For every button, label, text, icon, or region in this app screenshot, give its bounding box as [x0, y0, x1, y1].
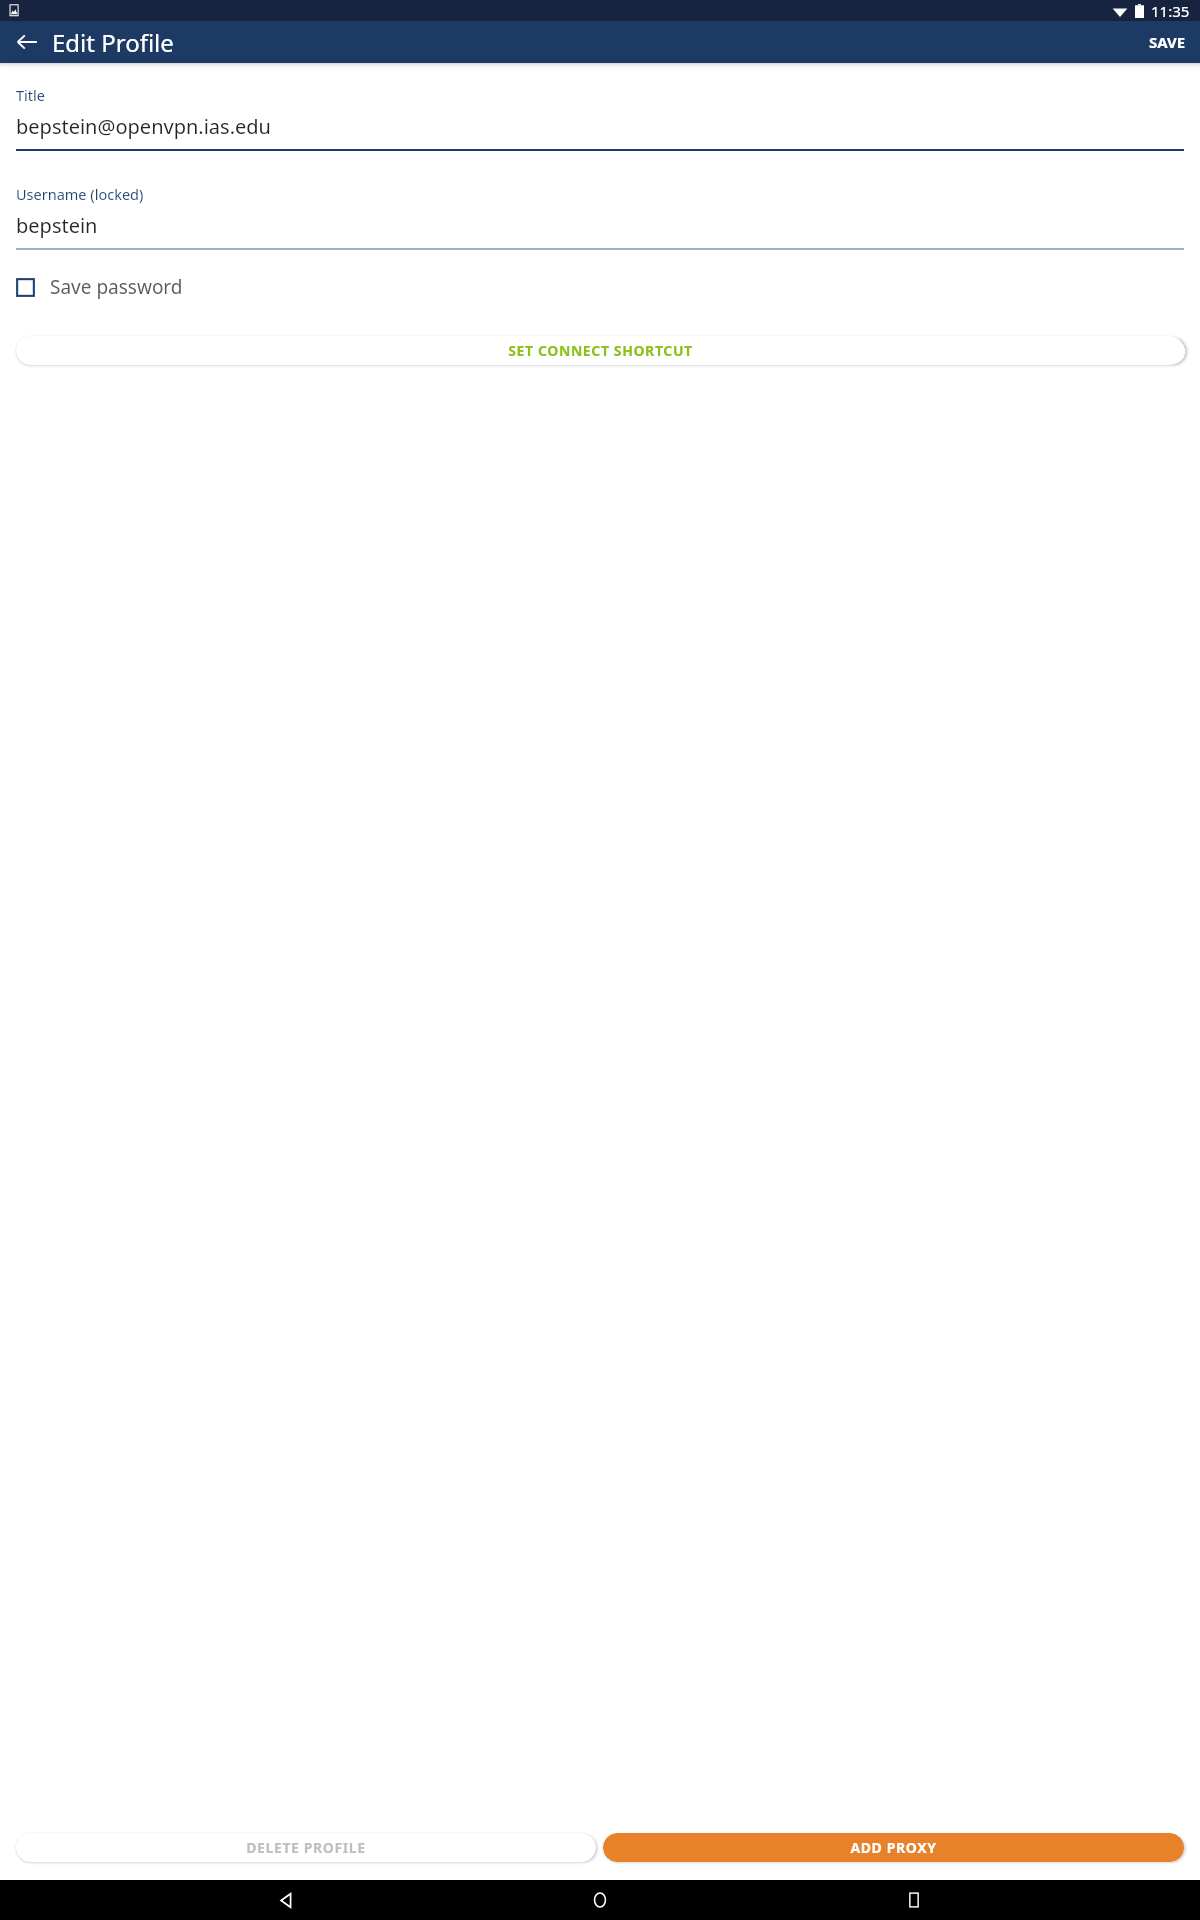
button[interactable]: Username (locked): [16, 184, 1184, 250]
staticText: ADD PROXY: [850, 1838, 937, 1857]
button[interactable]: SAVE: [1135, 24, 1200, 60]
button[interactable]: DELETE PROFILE: [16, 1833, 596, 1862]
button[interactable]: Back: [7, 22, 47, 62]
button[interactable]: Home: [572, 1880, 628, 1920]
button[interactable]: ADD PROXY: [603, 1833, 1184, 1862]
button[interactable]: Back: [258, 1880, 314, 1920]
staticText: 11:35: [1151, 1, 1190, 21]
staticText: Edit Profile: [52, 26, 174, 59]
staticText: SET CONNECT SHORTCUT: [508, 341, 693, 360]
button[interactable]: SET CONNECT SHORTCUT: [16, 336, 1184, 365]
button[interactable]: Title: [16, 85, 1184, 151]
staticText: Save password: [50, 274, 183, 300]
staticText: Username (locked): [16, 184, 144, 204]
button[interactable]: Recent apps: [886, 1880, 942, 1920]
staticText: bepstein@openvpn.ias.edu: [16, 113, 271, 140]
button[interactable]: Save password: [0, 266, 1200, 308]
staticText: SAVE: [1149, 32, 1186, 52]
staticText: DELETE PROFILE: [246, 1838, 366, 1857]
staticText: Title: [16, 85, 45, 105]
staticText: bepstein: [16, 212, 98, 239]
